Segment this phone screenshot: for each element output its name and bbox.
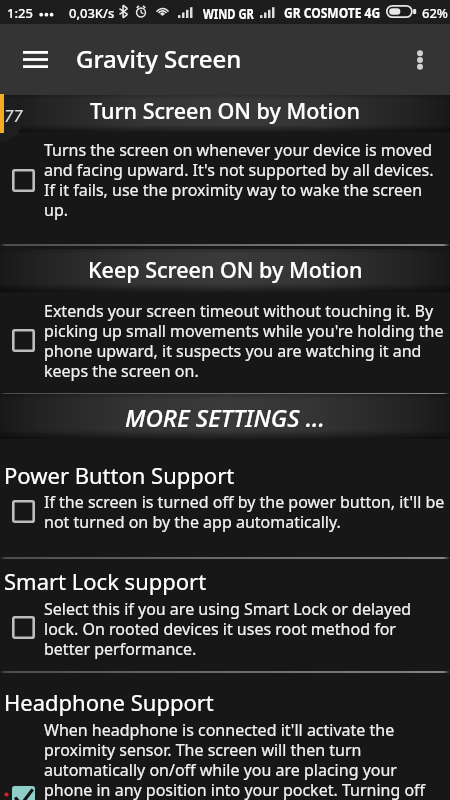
staticText: Extends your screen timeout without touc… [44, 300, 446, 381]
staticText: WIND GR [203, 4, 254, 23]
staticText: 1:25 [7, 4, 33, 22]
button[interactable]: If the screen is turned off by the power… [0, 491, 450, 553]
staticText: Smart Lock support [4, 566, 207, 596]
staticText: MORE SETTINGS ... [125, 401, 325, 434]
staticText: Turns the screen on whenever your device… [44, 139, 446, 220]
button[interactable]: Turns the screen on whenever your device… [0, 139, 450, 239]
staticText: 77 [4, 104, 23, 127]
staticText: Select this if you are using Smart Lock … [44, 598, 446, 659]
staticText: Keep Screen ON by Motion [88, 255, 363, 284]
staticText: If the screen is turned off by the power… [44, 491, 446, 532]
staticText: GR COSMOTE 4G [284, 4, 381, 22]
staticText: When headphone is connected it'll activa… [44, 719, 446, 800]
button[interactable]: Open navigation menu [0, 24, 71, 95]
button[interactable]: When headphone is connected it'll activa… [0, 719, 450, 800]
staticText: Headphone Support [4, 687, 214, 717]
button[interactable]: More options [396, 24, 444, 95]
staticText: Gravity Screen [76, 42, 242, 75]
staticText: 0,03K/s [69, 4, 115, 22]
staticText: 62% [422, 4, 448, 22]
staticText: Turn Screen ON by Motion [90, 96, 360, 125]
button[interactable]: Extends your screen timeout without touc… [0, 300, 450, 390]
button[interactable]: Select this if you are using Smart Lock … [0, 598, 450, 668]
staticText: Power Button Support [4, 460, 235, 490]
